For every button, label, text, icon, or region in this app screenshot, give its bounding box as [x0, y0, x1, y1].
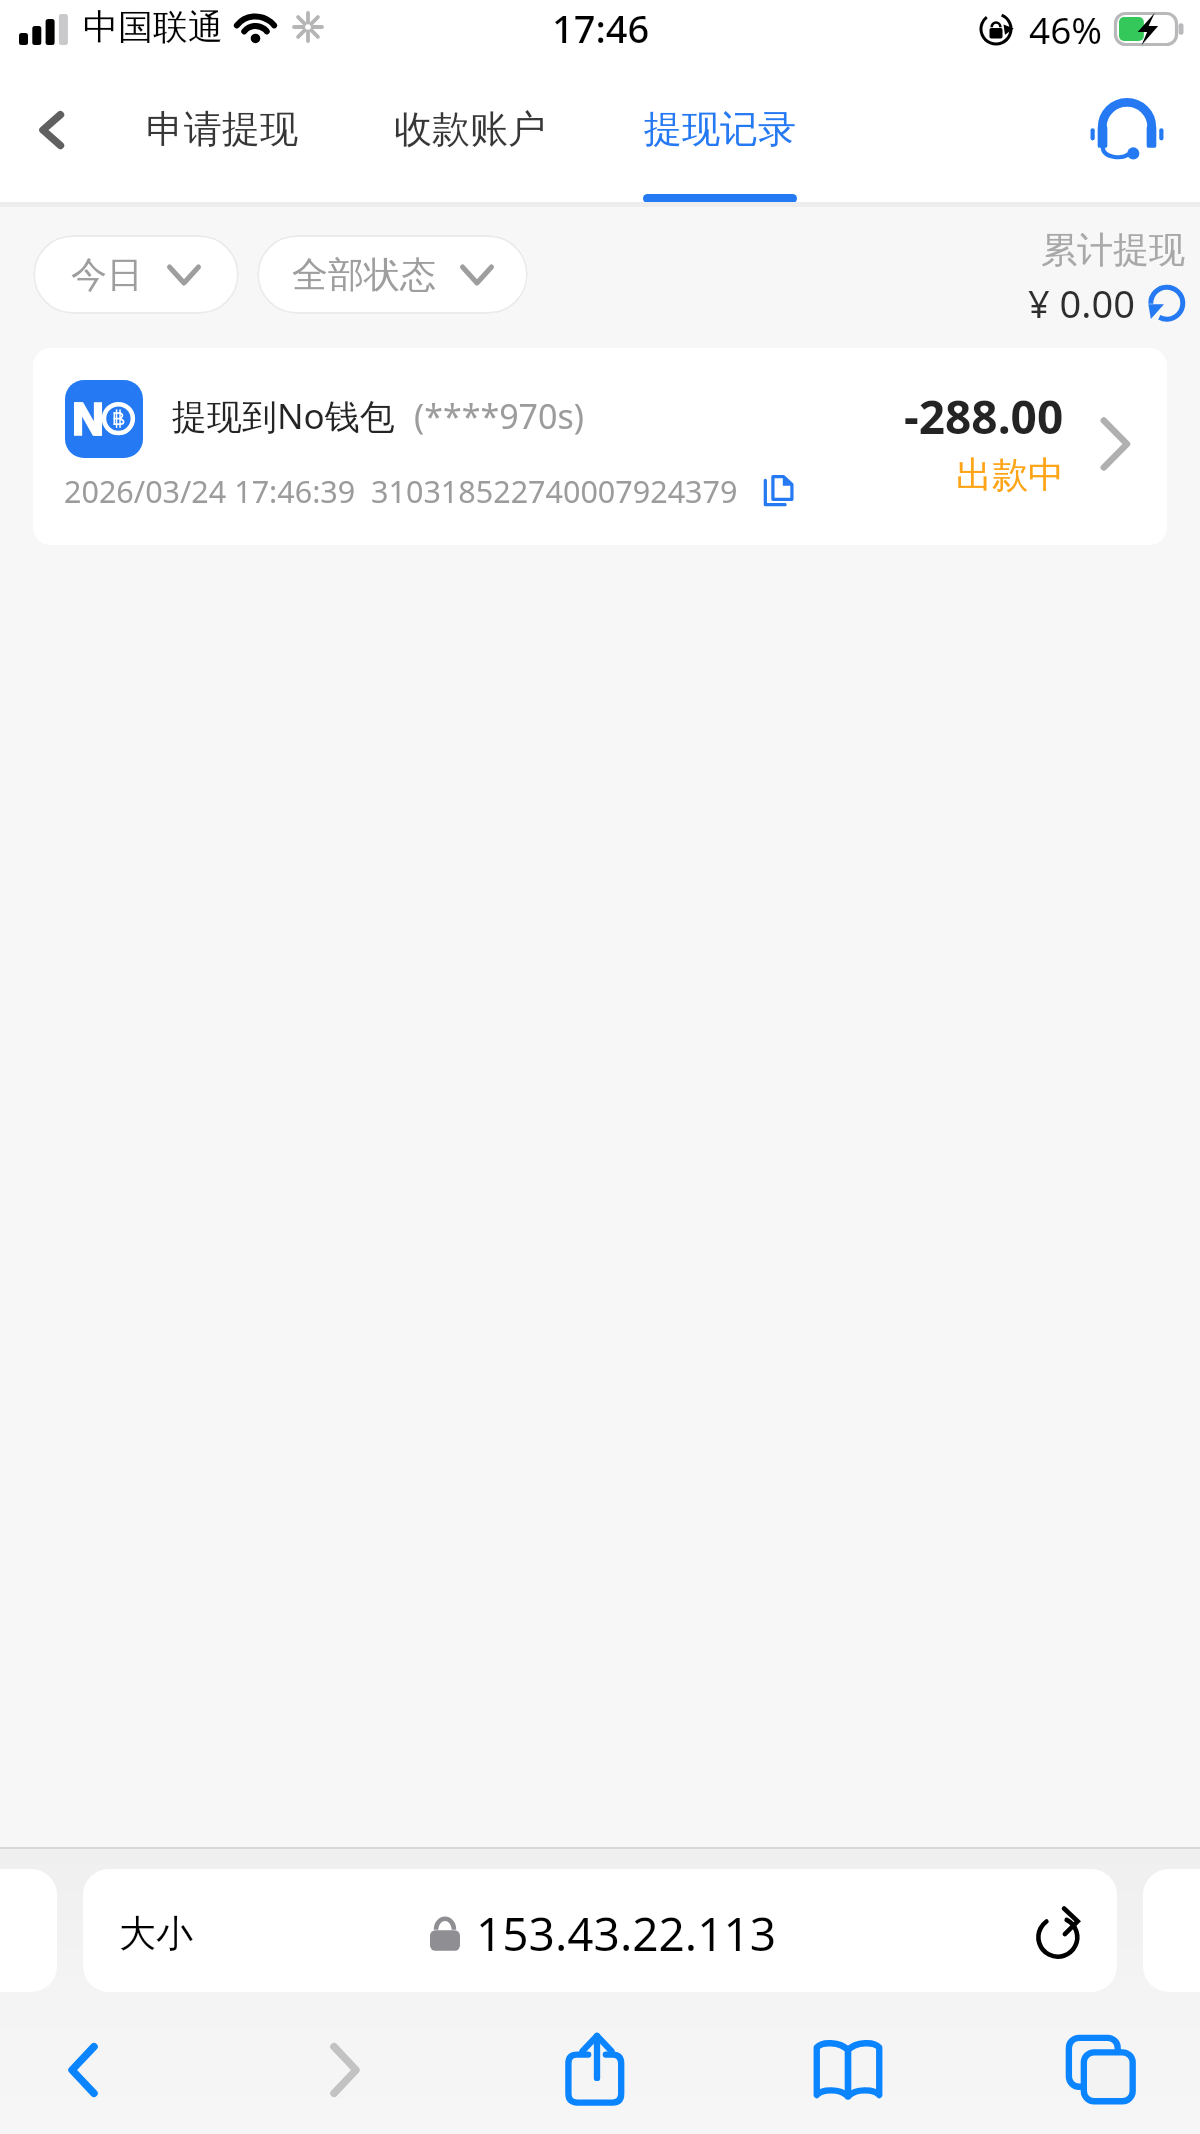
staticText: 153.43.22.113 — [476, 1902, 777, 1965]
button[interactable]: 申请提现 — [127, 88, 317, 202]
button[interactable]: 全部状态 — [257, 235, 528, 314]
button[interactable]: Bookmarks — [804, 2026, 892, 2114]
staticText: 今日 — [71, 252, 143, 297]
staticText: -288.00 — [904, 385, 1064, 448]
button[interactable]: 收款账户 — [375, 88, 565, 202]
staticText: 提现记录 — [644, 105, 796, 153]
staticText: 累计提现 — [1041, 227, 1185, 272]
button[interactable]: Share — [553, 2026, 641, 2114]
staticText: 收款账户 — [394, 105, 546, 153]
staticText: 中国联通 — [83, 5, 223, 49]
button[interactable]: Refresh — [1146, 284, 1186, 324]
staticText: 17:46 — [552, 2, 650, 54]
staticText: 申请提现 — [146, 105, 298, 153]
button[interactable]: Copy order number — [760, 472, 798, 510]
button[interactable]: 提现到No钱包 — [33, 348, 1167, 545]
staticText: (****970s) — [414, 393, 584, 439]
button[interactable]: 今日 — [33, 235, 239, 314]
staticText: 46% — [1029, 4, 1103, 54]
button[interactable]: Back — [16, 94, 86, 164]
button[interactable]: 提现记录 — [625, 88, 815, 202]
staticText: 大小 — [119, 1910, 193, 1957]
staticText: 全部状态 — [292, 252, 436, 297]
button[interactable]: Forward — [301, 2026, 389, 2114]
button[interactable]: 大小 — [83, 1869, 1117, 1992]
staticText: 2026/03/24 17:46:39 31031852274000792437… — [64, 470, 738, 512]
staticText: ¥ 0.00 — [1028, 277, 1136, 329]
button[interactable]: Tabs — [1057, 2026, 1145, 2114]
button[interactable]: Back — [39, 2026, 127, 2114]
staticText: 提现到No钱包 — [172, 392, 395, 440]
button[interactable]: Customer service — [1085, 92, 1169, 166]
button[interactable]: Reload — [1033, 1907, 1087, 1961]
staticText: 出款中 — [956, 452, 1064, 497]
